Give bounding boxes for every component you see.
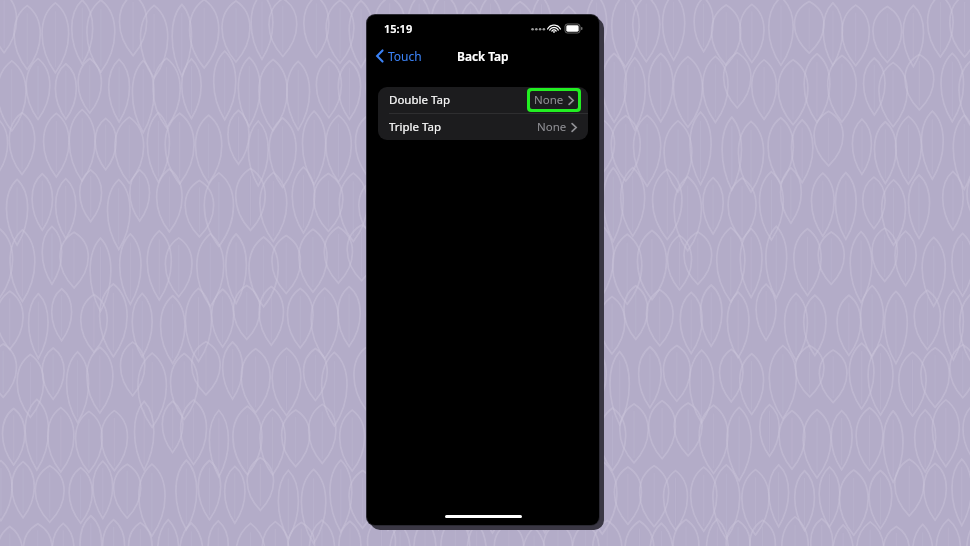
button[interactable]: Touch — [373, 45, 425, 67]
other: Open — [571, 122, 577, 133]
staticText: Double Tap — [389, 92, 450, 108]
staticText: Touch — [388, 48, 422, 64]
staticText: Triple Tap — [389, 119, 442, 135]
other: Open — [568, 95, 574, 106]
button[interactable]: Double Tap — [378, 87, 588, 113]
staticText: 15:19 — [384, 21, 413, 36]
staticText: Back Tap — [457, 48, 509, 64]
staticText: None — [537, 119, 567, 135]
staticText: None — [534, 92, 564, 108]
button[interactable]: Triple Tap — [378, 114, 588, 140]
